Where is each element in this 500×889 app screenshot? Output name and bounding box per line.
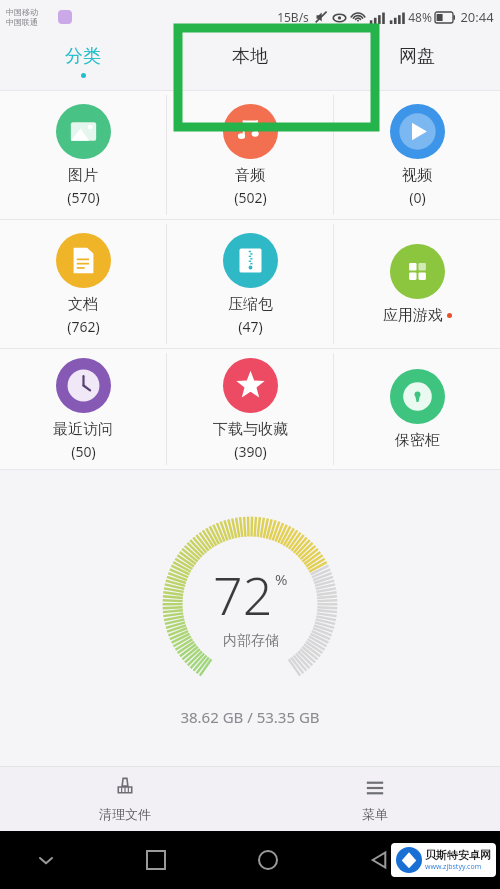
button[interactable]: 最近访问 bbox=[0, 349, 166, 469]
staticText: 保密柜 bbox=[395, 431, 440, 450]
button[interactable]: 清理文件 bbox=[0, 767, 250, 831]
button[interactable]: 下载与收藏 bbox=[167, 349, 333, 469]
staticText: 图片 bbox=[68, 166, 98, 185]
button[interactable]: Recents bbox=[136, 840, 176, 880]
button[interactable]: 压缩包 bbox=[167, 220, 333, 348]
button[interactable]: 图片 bbox=[0, 91, 166, 219]
staticText: 本地 bbox=[232, 45, 268, 68]
staticText: 中国移动 bbox=[6, 7, 38, 17]
button[interactable]: 视频 bbox=[334, 91, 500, 219]
staticText: 最近访问 bbox=[53, 420, 113, 439]
staticText: 下载与收藏 bbox=[213, 420, 288, 439]
staticText: 网盘 bbox=[399, 45, 435, 68]
staticText: 菜单 bbox=[362, 806, 388, 822]
button[interactable]: Home bbox=[248, 840, 288, 880]
staticText: (762) bbox=[67, 317, 100, 336]
staticText: (390) bbox=[234, 442, 267, 461]
staticText: 清理文件 bbox=[99, 806, 151, 822]
staticText: 38.62 GB / 53.35 GB bbox=[180, 707, 320, 727]
staticText: 72 bbox=[213, 559, 273, 630]
staticText: % bbox=[275, 569, 288, 589]
staticText: 15B/s bbox=[277, 9, 309, 25]
staticText: (50) bbox=[71, 442, 96, 461]
button[interactable]: Back bbox=[359, 840, 399, 880]
staticText: 贝斯特安卓网 bbox=[425, 848, 491, 862]
staticText: www.zjbstyy.com bbox=[425, 862, 482, 872]
button[interactable]: 保密柜 bbox=[334, 349, 500, 469]
button[interactable]: 音频 bbox=[167, 91, 333, 219]
staticText: 视频 bbox=[402, 166, 432, 185]
staticText: 20:44 bbox=[460, 8, 494, 26]
button[interactable]: Hide bbox=[28, 842, 64, 878]
staticText: 应用游戏 bbox=[383, 306, 443, 325]
staticText: (570) bbox=[67, 188, 100, 207]
staticText: 压缩包 bbox=[228, 295, 273, 314]
button[interactable]: 分类 bbox=[0, 33, 166, 90]
button[interactable]: 本地 bbox=[166, 33, 333, 90]
staticText: 内部存储 bbox=[223, 632, 279, 650]
staticText: 文档 bbox=[68, 295, 98, 314]
button[interactable]: 网盘 bbox=[333, 33, 500, 90]
staticText: (0) bbox=[409, 188, 426, 207]
button[interactable]: 菜单 bbox=[250, 767, 500, 831]
button[interactable]: 应用游戏 bbox=[334, 220, 500, 348]
staticText: 分类 bbox=[65, 45, 101, 68]
staticText: (47) bbox=[238, 317, 263, 336]
staticText: 音频 bbox=[235, 166, 265, 185]
button[interactable]: 文档 bbox=[0, 220, 166, 348]
staticText: 中国联通 bbox=[6, 17, 38, 27]
staticText: (502) bbox=[234, 188, 267, 207]
staticText: 48% bbox=[408, 9, 432, 25]
